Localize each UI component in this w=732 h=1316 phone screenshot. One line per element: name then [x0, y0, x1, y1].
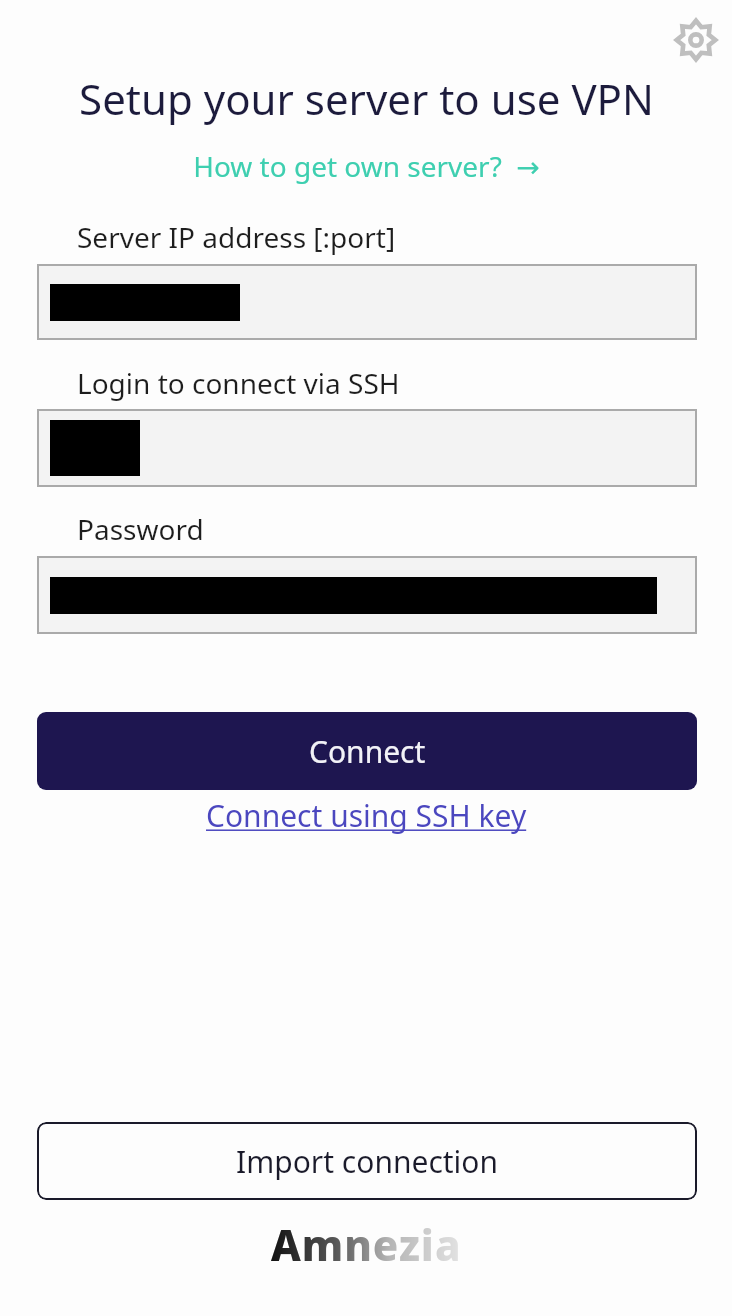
staticText: Login to connect via SSH	[77, 364, 400, 402]
staticText: Connect	[309, 731, 426, 772]
button[interactable]: Connect	[37, 712, 697, 790]
staticText: Connect using SSH key	[206, 795, 527, 836]
button[interactable]	[37, 556, 697, 634]
staticText: Amnezia	[271, 1216, 462, 1273]
button[interactable]	[37, 409, 697, 487]
staticText: Password	[77, 510, 204, 548]
staticText: Setup your server to use VPN	[79, 70, 654, 127]
staticText: How to get own server? →	[193, 147, 540, 185]
button[interactable]: How to get own server? →	[187, 145, 546, 187]
staticText: Import connection	[236, 1141, 499, 1182]
button[interactable]	[37, 264, 697, 340]
button[interactable]: Connect using SSH key	[202, 793, 531, 838]
staticText: Server IP address [:port]	[77, 218, 396, 256]
button[interactable]: Settings	[666, 10, 726, 70]
button[interactable]: Import connection	[37, 1122, 697, 1200]
